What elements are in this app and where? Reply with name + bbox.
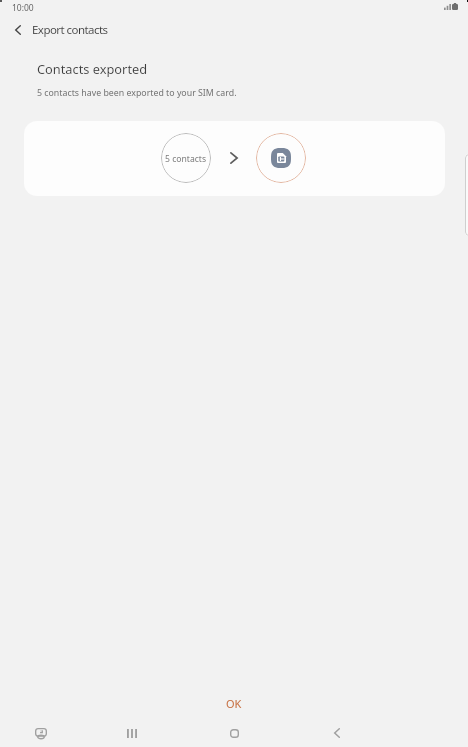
button[interactable]: Home xyxy=(214,719,254,747)
button[interactable]: OK xyxy=(206,691,262,716)
button[interactable]: Hide keyboard xyxy=(21,719,61,747)
staticText: OK xyxy=(226,696,242,711)
staticText: Contacts exported xyxy=(37,60,148,77)
button[interactable]: 5 contacts xyxy=(24,121,445,196)
button[interactable]: Recent apps xyxy=(112,719,152,747)
staticText: 5 contacts xyxy=(165,153,207,165)
staticText: 10:00 xyxy=(12,2,34,14)
staticText: 5 contacts have been exported to your SI… xyxy=(37,87,237,99)
staticText: Export contacts xyxy=(32,22,108,38)
button[interactable]: Back xyxy=(317,719,357,747)
button[interactable]: Navigate up xyxy=(6,18,30,42)
